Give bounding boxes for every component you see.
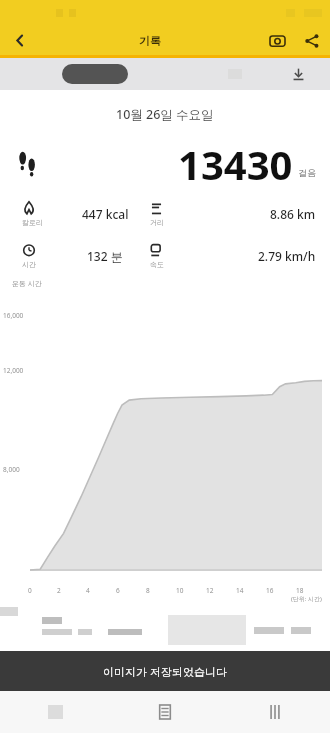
staticText: 칼로리 [22, 218, 43, 227]
button[interactable]: Filter [62, 64, 128, 84]
button[interactable]: Capture [260, 26, 294, 55]
button[interactable]: Share [294, 26, 330, 55]
staticText: 이미지가 저장되었습니다 [103, 664, 227, 679]
staticText: 걸음 [298, 167, 316, 178]
staticText: (단위: 시간) [291, 595, 322, 603]
staticText: 2 [57, 586, 61, 595]
staticText: 16 [266, 586, 274, 595]
staticText: 8.86 km [270, 206, 316, 222]
staticText: 6 [116, 586, 120, 595]
staticText: 13430 [178, 137, 293, 191]
button[interactable]: Back [0, 26, 40, 55]
button[interactable]: Home [110, 691, 220, 733]
button[interactable]: Back [220, 691, 330, 733]
staticText: 10월 26일 수요일 [116, 106, 214, 123]
staticText: 기록 [139, 34, 161, 48]
staticText: 132 분 [87, 248, 123, 264]
staticText: 거리 [150, 218, 164, 227]
staticText: 8 [146, 586, 150, 595]
staticText: 속도 [150, 260, 164, 269]
staticText: 16,000 [3, 311, 24, 320]
staticText: 18 [296, 586, 304, 595]
staticText: 운동 시간 [12, 279, 42, 289]
staticText: 8,000 [3, 465, 20, 474]
staticText: 12,000 [3, 366, 24, 375]
staticText: 10 [176, 586, 184, 595]
staticText: 14 [236, 586, 244, 595]
staticText: 2.79 km/h [258, 248, 316, 264]
staticText: 시간 [22, 260, 36, 269]
staticText: 12 [206, 586, 214, 595]
button[interactable]: Download [284, 60, 312, 88]
staticText: 4 [86, 586, 90, 595]
staticText: 0 [28, 586, 32, 595]
staticText: 447 kcal [82, 206, 129, 222]
button[interactable]: Recents [0, 691, 110, 733]
